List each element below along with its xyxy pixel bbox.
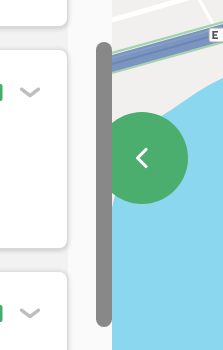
button[interactable]: Expand: [20, 82, 42, 104]
button[interactable]: [0, 50, 68, 248]
button[interactable]: Expand: [20, 303, 42, 325]
button[interactable]: Back: [118, 112, 210, 204]
button[interactable]: [0, 272, 68, 350]
